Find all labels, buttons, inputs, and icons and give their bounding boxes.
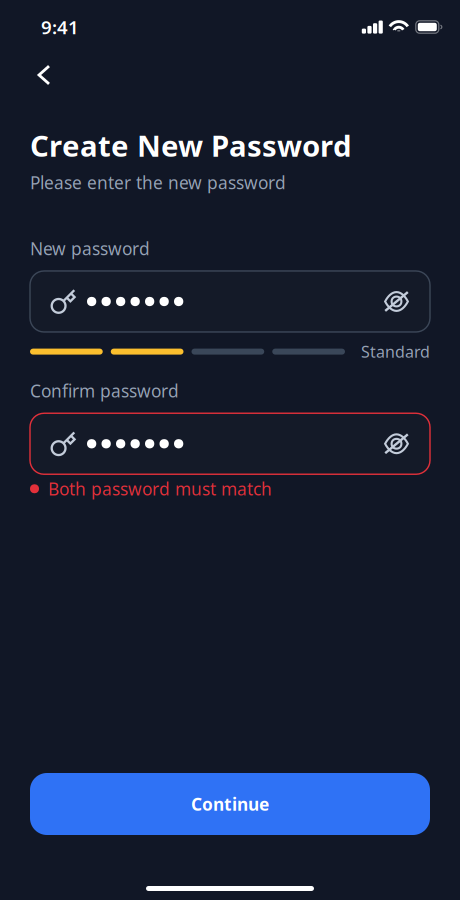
staticText: New password	[30, 237, 150, 260]
staticText: Confirm password	[30, 379, 179, 402]
staticText: Standard	[361, 341, 430, 362]
button[interactable]: Back	[37, 55, 77, 95]
button[interactable]: Continue	[30, 773, 430, 835]
button[interactable]: Hide password	[384, 279, 409, 323]
staticText: Continue	[191, 792, 269, 815]
staticText: 9:41	[41, 15, 79, 39]
button[interactable]: Hide password	[384, 422, 409, 466]
staticText: Create New Password	[30, 126, 352, 165]
staticText: Both password must match	[48, 477, 272, 500]
staticText: Please enter the new password	[30, 171, 286, 194]
